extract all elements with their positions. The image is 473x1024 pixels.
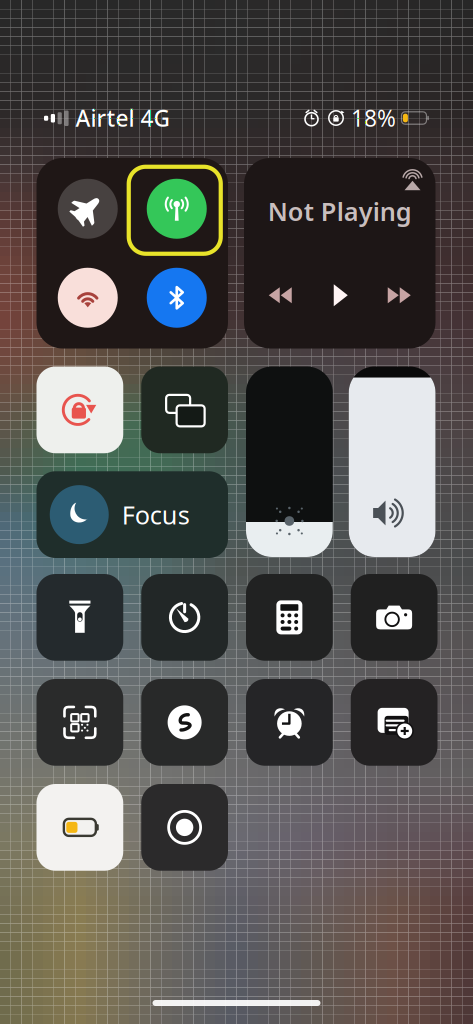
button[interactable]: Brightness	[246, 366, 333, 557]
button[interactable]: Rotation Lock	[36, 366, 123, 453]
button[interactable]: Shazam	[141, 679, 228, 766]
button[interactable]: Bluetooth	[138, 259, 216, 337]
button[interactable]: Airplane Mode	[49, 170, 127, 248]
button[interactable]: Screen Mirroring	[141, 366, 228, 453]
button[interactable]: Camera	[351, 574, 438, 661]
staticText: Airtel 4G	[76, 103, 170, 133]
button[interactable]: Screen Recording	[141, 784, 228, 871]
staticText: Focus	[122, 498, 190, 531]
button[interactable]: Code Scanner	[36, 679, 123, 766]
button[interactable]: Calculator	[246, 574, 333, 661]
button[interactable]: Cellular Data	[138, 170, 216, 248]
button[interactable]: Now Playing	[244, 158, 435, 348]
button[interactable]: Alarm	[246, 679, 333, 766]
staticText: Not Playing	[268, 194, 412, 228]
button[interactable]: Focus	[36, 471, 228, 558]
button[interactable]: Volume	[349, 366, 436, 557]
button[interactable]: Flashlight	[36, 574, 123, 661]
button[interactable]: Low Power Mode	[36, 784, 123, 871]
staticText: 18%	[351, 103, 396, 133]
button[interactable]: Timer	[141, 574, 228, 661]
button[interactable]: Quick Note	[351, 679, 438, 766]
button[interactable]: Wi‑Fi	[49, 259, 127, 337]
